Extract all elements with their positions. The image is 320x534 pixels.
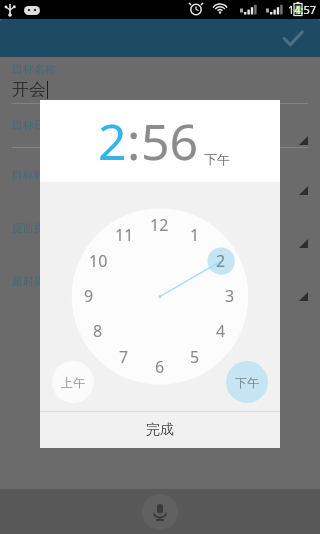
staticText: 3 [225,285,235,307]
staticText: 56 [141,107,199,175]
staticText: 下午 [204,151,230,167]
staticText: 完成 [146,421,174,439]
staticText: 7 [119,346,129,368]
staticText: 2 [216,250,226,272]
staticText: 9 [84,285,94,307]
staticText: 5 [190,346,200,368]
staticText: 1 [190,224,200,246]
button[interactable]: 提前提醒 [12,221,308,248]
staticText: 目标时间 [12,168,56,182]
button[interactable]: 超时提醒 [12,274,308,301]
staticText: 2 [98,107,127,175]
staticText: 开会 [12,79,46,100]
staticText: 14:57 [288,2,317,17]
staticText: 10 [89,250,108,272]
staticText: 12 [150,214,169,236]
staticText: 目标名称 [12,62,56,76]
button[interactable]: Voice input [142,494,178,530]
staticText: 超时提醒 [12,274,56,288]
staticText: 4 [216,320,226,342]
button[interactable]: 目标时间 [12,168,308,195]
button[interactable]: 下午 [226,361,268,403]
button[interactable]: 目标日期 [12,118,308,148]
staticText: 下午 [235,375,259,390]
staticText: 11 [115,224,134,246]
staticText: 目标日期 [12,118,56,132]
button[interactable]: 完成 [40,412,280,448]
staticText: 8 [93,320,103,342]
button[interactable]: 上午 [52,361,94,403]
staticText: 上午 [61,375,85,390]
staticText: : [127,107,141,175]
staticText: 提前提醒 [12,221,56,235]
staticText: 6 [155,356,165,378]
button[interactable]: Save [266,19,320,57]
